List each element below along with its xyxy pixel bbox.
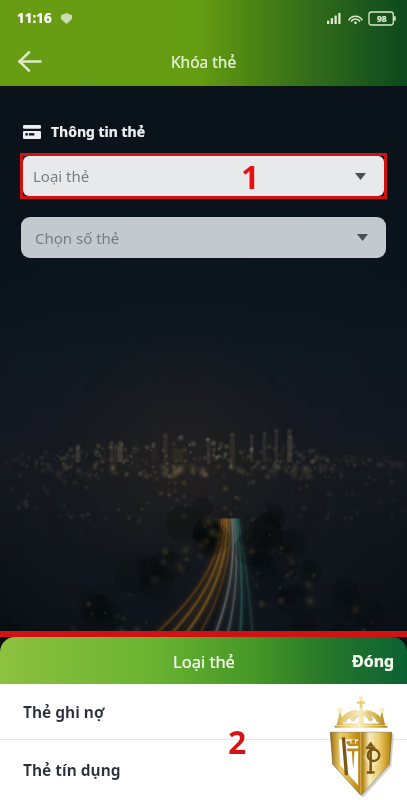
staticText: Thẻ tín dụng — [23, 759, 121, 780]
staticText: Chọn số thẻ — [35, 228, 120, 248]
staticText: 1 — [241, 155, 260, 199]
button[interactable]: Chọn số thẻ — [21, 217, 386, 258]
button[interactable]: Loại thẻ — [23, 156, 384, 196]
staticText: 98 — [377, 13, 387, 25]
button[interactable]: Thẻ tín dụng — [0, 740, 407, 799]
staticText: Thông tin thẻ — [51, 122, 146, 141]
staticText: Loại thẻ — [173, 650, 235, 672]
staticText: Khóa thẻ — [171, 51, 237, 72]
staticText: Đóng — [352, 650, 395, 672]
button[interactable]: Thẻ ghi nợ — [0, 684, 407, 739]
button[interactable]: Loại thẻ — [0, 637, 407, 684]
staticText: 2 — [228, 720, 247, 764]
button[interactable]: Back — [7, 39, 51, 83]
staticText: 11:16 — [17, 9, 52, 27]
staticText: Thẻ ghi nợ — [23, 701, 105, 722]
staticText: Loại thẻ — [33, 166, 90, 186]
